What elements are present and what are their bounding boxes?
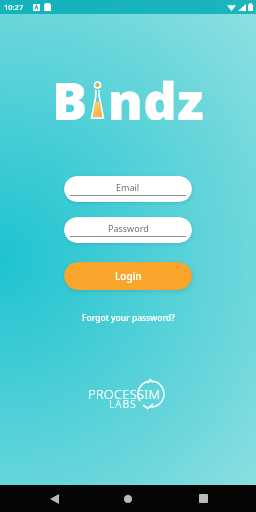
button[interactable]: Email [64, 176, 192, 202]
button[interactable]: Back [33, 485, 75, 512]
button[interactable]: Forgot your password? [76, 309, 181, 327]
staticText: PROCESSIM [88, 385, 161, 403]
staticText: LABS [109, 397, 137, 411]
staticText: Email [116, 181, 140, 193]
button[interactable]: Password [64, 217, 192, 243]
staticText: Password [108, 222, 149, 234]
button[interactable]: Processim Labs [86, 384, 170, 410]
staticText: 10:27 [4, 2, 24, 12]
button[interactable]: Recent apps [182, 485, 224, 512]
button[interactable]: Login [64, 262, 192, 290]
staticText: Login [115, 269, 142, 283]
staticText: Forgot your password? [82, 312, 175, 324]
staticText: ndz [108, 64, 205, 120]
button[interactable]: Home [107, 485, 149, 512]
staticText: B [52, 64, 88, 120]
